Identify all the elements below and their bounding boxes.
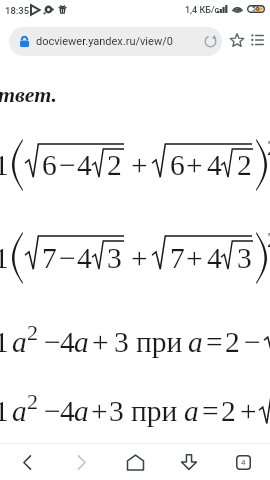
- staticText: a: [188, 326, 203, 359]
- staticText: =: [202, 395, 219, 428]
- staticText: +: [92, 326, 109, 359]
- staticText: 3: [237, 242, 252, 275]
- staticText: 6: [42, 149, 57, 182]
- staticText: −: [244, 326, 261, 359]
- staticText: +: [131, 149, 148, 182]
- staticText: 2: [225, 326, 240, 359]
- staticText: 1: [0, 242, 9, 275]
- button[interactable]: docviewer.yandex.ru/view/0: [9, 27, 222, 56]
- staticText: 2: [267, 135, 270, 159]
- button[interactable]: Reload: [198, 29, 222, 53]
- staticText: +: [240, 395, 257, 428]
- staticText: 4: [207, 149, 222, 182]
- button[interactable]: Downloads: [162, 444, 216, 480]
- button[interactable]: Bookmark: [226, 29, 247, 50]
- staticText: при: [131, 395, 178, 428]
- staticText: 3: [114, 326, 129, 359]
- staticText: 4: [241, 458, 246, 467]
- staticText: 7: [170, 242, 185, 275]
- staticText: 18:35: [5, 5, 30, 16]
- staticText: =: [206, 326, 223, 359]
- staticText: a: [12, 326, 27, 359]
- staticText: твет.: [0, 82, 58, 106]
- staticText: 2: [267, 227, 270, 251]
- staticText: +: [186, 149, 203, 182]
- staticText: 4: [60, 395, 75, 428]
- staticText: 2: [107, 149, 122, 182]
- staticText: 1: [0, 326, 9, 359]
- staticText: a: [184, 395, 199, 428]
- staticText: +: [91, 395, 108, 428]
- button[interactable]: Home: [108, 444, 162, 480]
- staticText: 7: [42, 242, 57, 275]
- staticText: 2: [221, 395, 236, 428]
- staticText: 4: [77, 242, 92, 275]
- staticText: 1: [0, 395, 9, 428]
- staticText: 4: [60, 326, 75, 359]
- staticText: при: [136, 326, 183, 359]
- button[interactable]: Forward: [54, 444, 108, 480]
- staticText: 4: [207, 242, 222, 275]
- staticText: a: [74, 326, 89, 359]
- button[interactable]: Menu: [247, 29, 268, 50]
- staticText: 1,4 КБ/с: [185, 5, 220, 16]
- staticText: 6: [170, 149, 185, 182]
- staticText: a: [12, 395, 27, 428]
- staticText: a: [74, 395, 89, 428]
- staticText: −: [44, 395, 61, 428]
- staticText: 2: [237, 149, 252, 182]
- staticText: 2: [27, 389, 38, 413]
- staticText: −: [59, 149, 76, 182]
- staticText: −: [59, 242, 76, 275]
- staticText: 2: [27, 320, 38, 344]
- button[interactable]: Back: [0, 444, 54, 480]
- staticText: −: [44, 326, 61, 359]
- button[interactable]: Tabs: [216, 444, 270, 480]
- staticText: 4: [77, 149, 92, 182]
- staticText: 3: [109, 395, 124, 428]
- staticText: docviewer.yandex.ru/view/0: [36, 35, 173, 48]
- staticText: +: [186, 242, 203, 275]
- staticText: 3: [107, 242, 122, 275]
- staticText: 56: [252, 5, 260, 13]
- staticText: +: [131, 242, 148, 275]
- staticText: 1: [0, 149, 9, 182]
